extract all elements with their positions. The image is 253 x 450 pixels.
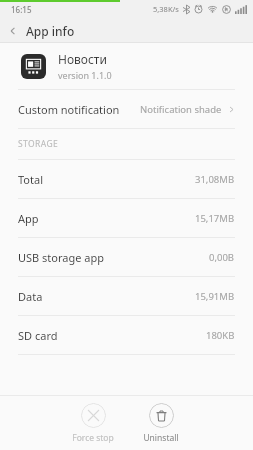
staticText: 31,08MB bbox=[195, 173, 235, 186]
staticText: Uninstall bbox=[143, 432, 179, 444]
button[interactable]: App bbox=[0, 199, 253, 237]
staticText: 5,38K/s bbox=[153, 4, 179, 14]
staticText: Custom notification bbox=[18, 102, 120, 117]
staticText: Новости bbox=[58, 51, 107, 67]
button[interactable]: Back bbox=[0, 18, 26, 43]
staticText: Force stop bbox=[72, 432, 114, 444]
button[interactable]: Новости bbox=[0, 43, 253, 89]
staticText: SD card bbox=[18, 328, 58, 343]
button[interactable]: Data bbox=[0, 277, 253, 315]
staticText: 180KB bbox=[206, 329, 235, 342]
button[interactable]: Custom notification bbox=[0, 90, 253, 128]
button[interactable]: USB storage app bbox=[0, 238, 253, 276]
staticText: 16:15 bbox=[11, 4, 32, 15]
button[interactable]: Total bbox=[0, 160, 253, 198]
staticText: 15,17MB bbox=[195, 212, 235, 225]
button[interactable]: Force stop bbox=[63, 403, 123, 444]
staticText: 0,00B bbox=[209, 251, 235, 264]
staticText: 15,91MB bbox=[195, 290, 235, 303]
staticText: version 1.1.0 bbox=[58, 69, 112, 81]
staticText: Total bbox=[18, 172, 43, 187]
staticText: Data bbox=[18, 289, 43, 304]
staticText: App info bbox=[26, 23, 75, 39]
staticText: STORAGE bbox=[18, 138, 59, 150]
staticText: USB storage app bbox=[18, 250, 105, 265]
button[interactable]: Uninstall bbox=[131, 403, 191, 444]
staticText: Notification shade bbox=[140, 103, 222, 116]
staticText: App bbox=[18, 211, 39, 226]
button[interactable]: SD card bbox=[0, 316, 253, 354]
